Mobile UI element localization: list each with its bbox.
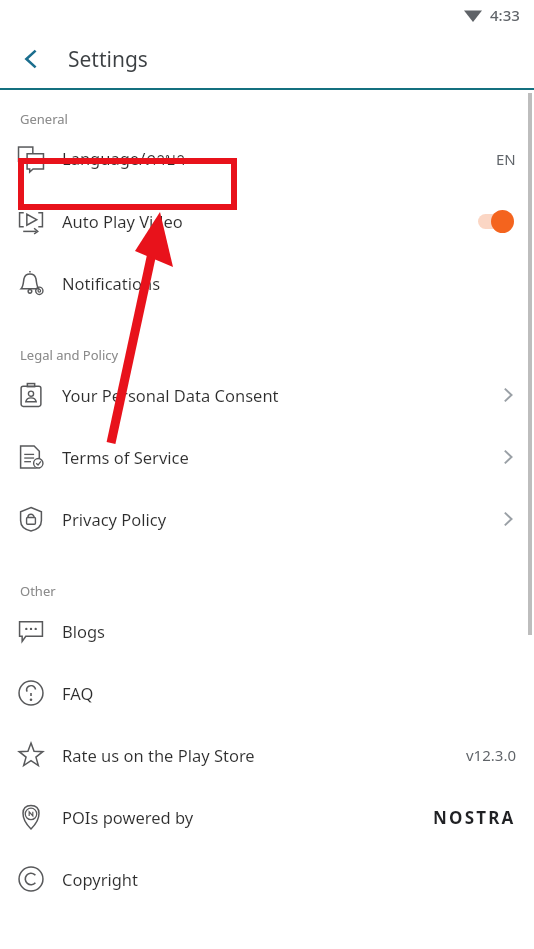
staticText: Privacy Policy <box>62 508 167 530</box>
staticText: Auto Play Video <box>62 210 183 232</box>
staticText: Legal and Policy <box>20 346 119 364</box>
staticText: Language/ภาษา <box>62 146 186 172</box>
button[interactable]: POIs powered by <box>0 786 534 848</box>
button[interactable]: Notifications <box>0 252 534 314</box>
button[interactable]: FAQ <box>0 662 534 724</box>
button[interactable]: Back <box>10 37 54 81</box>
staticText: EN <box>496 149 516 169</box>
staticText: Other <box>20 582 56 600</box>
button[interactable]: Privacy Policy <box>0 488 534 550</box>
button[interactable]: Language/ภาษา <box>0 128 534 190</box>
staticText: FAQ <box>62 682 94 704</box>
staticText: Notifications <box>62 272 161 294</box>
staticText: Terms of Service <box>62 446 189 468</box>
staticText: POIs powered by <box>62 806 194 828</box>
button[interactable]: Your Personal Data Consent <box>0 364 534 426</box>
staticText: Blogs <box>62 620 106 642</box>
button[interactable]: Terms of Service <box>0 426 534 488</box>
button[interactable]: Blogs <box>0 600 534 662</box>
button[interactable]: Rate us on the Play Store <box>0 724 534 786</box>
staticText: NOSTRA <box>433 806 516 829</box>
staticText: General <box>20 110 68 128</box>
staticText: Your Personal Data Consent <box>62 384 279 406</box>
staticText: Settings <box>68 45 148 74</box>
staticText: Copyright <box>62 868 139 890</box>
staticText: v12.3.0 <box>466 745 516 765</box>
staticText: 4:33 <box>490 5 520 25</box>
button[interactable]: Auto Play Video <box>0 190 534 252</box>
button[interactable]: Copyright <box>0 848 534 910</box>
staticText: Rate us on the Play Store <box>62 744 255 766</box>
